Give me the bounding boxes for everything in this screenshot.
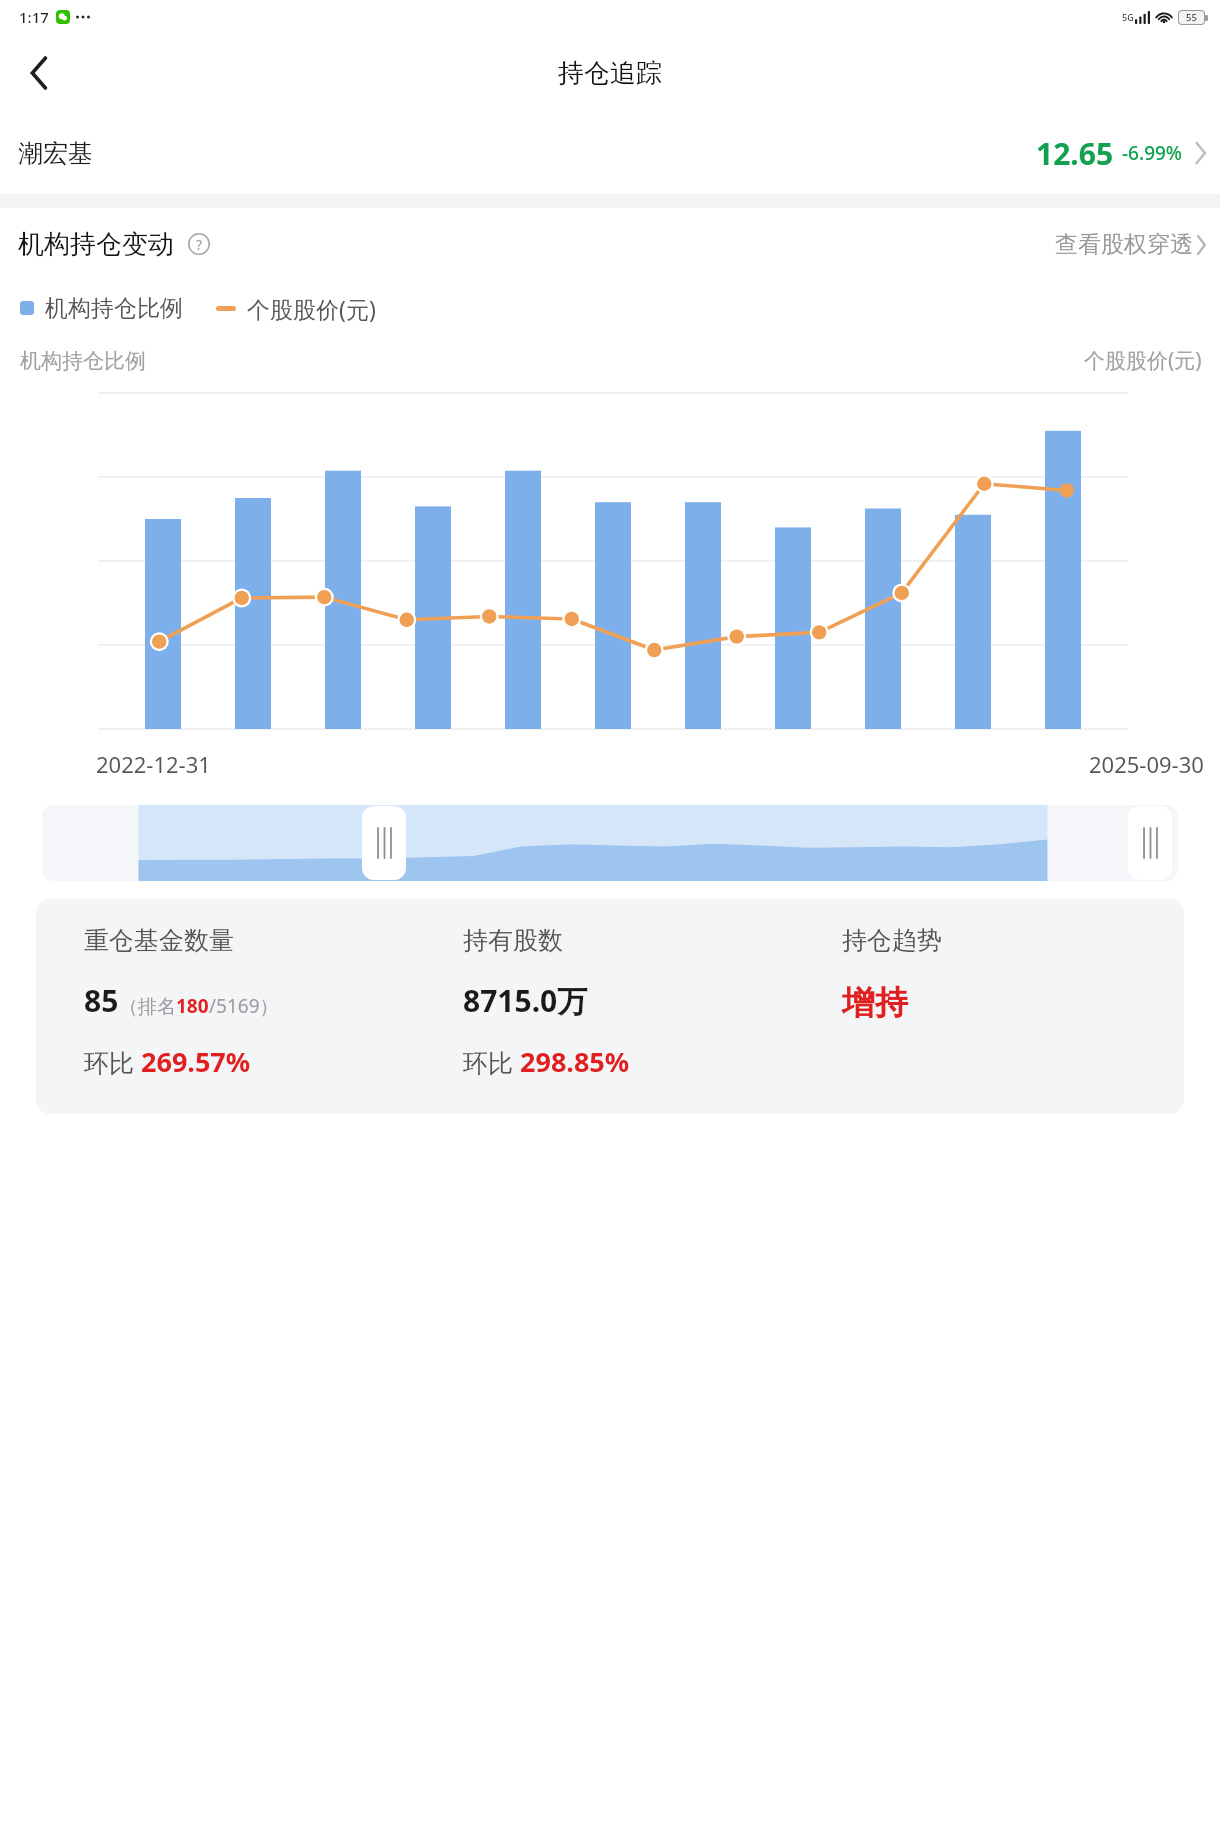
staticText: 20% (14, 644, 104, 645)
staticText: 持仓追踪 (558, 57, 662, 90)
staticText: 5G (1122, 11, 1134, 23)
staticText: 个股股价(元) (247, 293, 376, 324)
staticText: 机构持仓比例 (45, 294, 183, 323)
staticText: 269.57% (141, 1043, 251, 1080)
staticText: 持仓趋势 (842, 925, 942, 956)
staticText: 180 (176, 993, 209, 1019)
staticText: 60% (14, 477, 104, 478)
staticText: 个股股价(元) (1084, 346, 1202, 375)
staticText: 20 (1120, 393, 1190, 394)
staticText: 增持 (842, 982, 908, 1024)
staticText: -6.99% (1122, 140, 1183, 166)
staticText: 40% (14, 561, 104, 562)
staticText: 查看股权穿透 (1055, 230, 1193, 259)
button[interactable]: 潮宏基 (0, 112, 1220, 194)
staticText: 85 (84, 980, 119, 1021)
staticText: 15 (1120, 477, 1190, 478)
staticText: 环比 (84, 1045, 141, 1079)
staticText: ? (196, 235, 203, 254)
staticText: 10 (1120, 561, 1190, 562)
staticText: （排名 (119, 995, 176, 1019)
staticText: /5169） (209, 993, 279, 1019)
button[interactable]: 说明 (184, 229, 214, 259)
staticText: 机构持仓比例 (20, 348, 146, 374)
button[interactable]: Range handle (362, 806, 406, 880)
staticText: 8715.0万 (463, 980, 588, 1021)
staticText: 机构持仓变动 (18, 228, 174, 261)
button[interactable]: Back (12, 46, 66, 100)
button[interactable]: 查看股权穿透 (1055, 222, 1206, 267)
staticText: 持有股数 (463, 925, 563, 956)
staticText: 55 (1186, 11, 1197, 24)
staticText: 0% (14, 728, 104, 729)
staticText: 80% (14, 393, 104, 394)
staticText: 1:17 (19, 7, 49, 27)
staticText: 12.65 (1036, 133, 1114, 174)
staticText: 298.85% (520, 1043, 630, 1080)
staticText: 2022-12-31 (96, 749, 211, 779)
staticText: 0 (1120, 728, 1190, 729)
staticText: 2025-09-30 (1089, 749, 1204, 779)
staticText: 潮宏基 (18, 138, 93, 169)
button[interactable]: Range handle (1128, 806, 1172, 880)
staticText: 重仓基金数量 (84, 925, 234, 956)
staticText: 环比 (463, 1045, 520, 1079)
staticText: 5 (1120, 644, 1190, 645)
button[interactable]: Range handle (42, 805, 1178, 881)
